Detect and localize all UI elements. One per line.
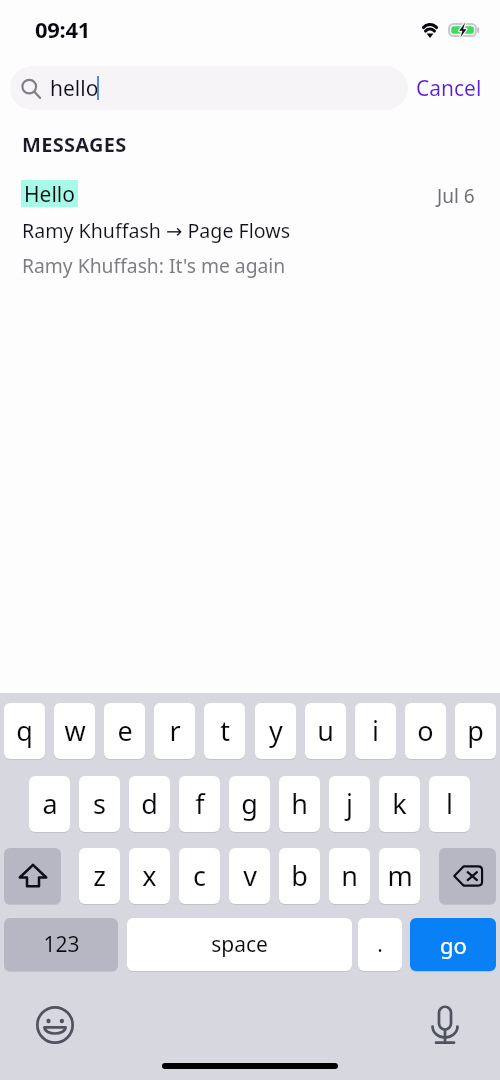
staticText: r bbox=[169, 712, 181, 749]
staticText: l bbox=[446, 785, 453, 822]
button[interactable]: p bbox=[455, 703, 496, 759]
button[interactable]: z bbox=[79, 848, 120, 904]
staticText: . bbox=[377, 930, 383, 959]
button[interactable]: Emoji keyboard bbox=[31, 1001, 79, 1049]
staticText: hello bbox=[50, 74, 99, 103]
button[interactable]: x bbox=[129, 848, 170, 904]
button[interactable]: hello bbox=[10, 66, 408, 110]
staticText: b bbox=[291, 857, 308, 894]
staticText: s bbox=[93, 785, 106, 822]
staticText: 123 bbox=[43, 930, 80, 959]
staticText: Jul 6 bbox=[437, 183, 475, 209]
button[interactable]: t bbox=[204, 703, 245, 759]
staticText: e bbox=[117, 712, 133, 749]
button[interactable]: 123 bbox=[4, 918, 118, 971]
staticText: Hello bbox=[24, 180, 75, 207]
button[interactable]: Shift bbox=[4, 848, 61, 904]
button[interactable]: Backspace bbox=[439, 848, 496, 904]
staticText: g bbox=[241, 785, 258, 822]
staticText: o bbox=[417, 712, 434, 749]
staticText: Cancel bbox=[416, 74, 482, 103]
staticText: go bbox=[440, 930, 467, 960]
button[interactable]: v bbox=[229, 848, 270, 904]
button[interactable]: j bbox=[329, 776, 370, 832]
staticText: v bbox=[243, 857, 257, 894]
button[interactable]: d bbox=[129, 776, 170, 832]
button[interactable]: u bbox=[305, 703, 346, 759]
button[interactable]: h bbox=[279, 776, 320, 832]
staticText: 09:41 bbox=[35, 14, 91, 44]
button[interactable]: Dictation bbox=[421, 1001, 469, 1049]
staticText: y bbox=[269, 712, 283, 749]
button[interactable]: m bbox=[379, 848, 420, 904]
button[interactable]: c bbox=[179, 848, 220, 904]
button[interactable]: l bbox=[429, 776, 470, 832]
staticText: d bbox=[141, 785, 158, 822]
staticText: t bbox=[220, 712, 230, 749]
staticText: z bbox=[93, 857, 106, 894]
staticText: p bbox=[467, 712, 484, 749]
button[interactable]: w bbox=[54, 703, 95, 759]
button[interactable]: a bbox=[29, 776, 70, 832]
button[interactable]: k bbox=[379, 776, 420, 832]
staticText: q bbox=[16, 712, 33, 749]
staticText: f bbox=[195, 785, 205, 822]
button[interactable]: space bbox=[127, 918, 352, 971]
button[interactable]: i bbox=[355, 703, 396, 759]
button[interactable]: g bbox=[229, 776, 270, 832]
staticText: k bbox=[392, 785, 407, 822]
staticText: w bbox=[64, 712, 86, 749]
staticText: j bbox=[346, 785, 353, 822]
button[interactable]: b bbox=[279, 848, 320, 904]
button[interactable]: s bbox=[79, 776, 120, 832]
button[interactable]: Cancel bbox=[410, 66, 488, 110]
button[interactable]: n bbox=[329, 848, 370, 904]
button[interactable]: y bbox=[255, 703, 296, 759]
button[interactable]: Hello bbox=[0, 172, 500, 290]
button[interactable]: go bbox=[410, 918, 496, 971]
staticText: c bbox=[193, 857, 206, 894]
staticText: h bbox=[291, 785, 308, 822]
staticText: a bbox=[42, 785, 58, 822]
button[interactable]: e bbox=[104, 703, 145, 759]
staticText: x bbox=[142, 857, 157, 894]
staticText: space bbox=[211, 930, 268, 959]
staticText: n bbox=[341, 857, 358, 894]
staticText: u bbox=[317, 712, 334, 749]
staticText: m bbox=[387, 857, 413, 894]
button[interactable]: q bbox=[4, 703, 45, 759]
button[interactable]: o bbox=[405, 703, 446, 759]
button[interactable]: f bbox=[179, 776, 220, 832]
staticText: Ramy Khuffash → Page Flows bbox=[22, 217, 291, 244]
button[interactable]: r bbox=[154, 703, 195, 759]
staticText: Ramy Khuffash: It's me again bbox=[22, 252, 286, 278]
staticText: i bbox=[372, 712, 379, 749]
button[interactable]: . bbox=[358, 918, 402, 971]
staticText: MESSAGES bbox=[22, 131, 127, 158]
